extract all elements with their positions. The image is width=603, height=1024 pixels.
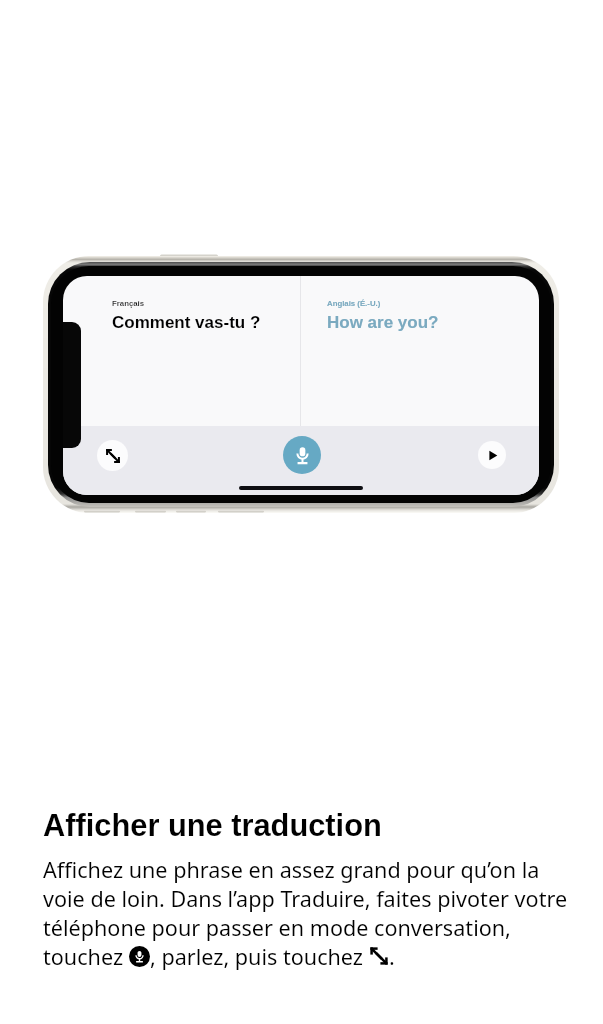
staticText: touchez xyxy=(43,942,129,971)
staticText: voie de loin. Dans l’app Traduire, faite… xyxy=(43,884,568,913)
staticText: How are you? xyxy=(327,313,439,332)
staticText: Afficher une traduction xyxy=(43,808,382,842)
button[interactable]: Expand to full screen xyxy=(97,440,128,471)
staticText: Comment vas-tu ? xyxy=(112,313,261,332)
staticText: téléphone pour passer en mode conversati… xyxy=(43,913,511,942)
staticText: , parlez, puis touchez xyxy=(150,942,369,971)
staticText: Français xyxy=(112,299,145,308)
staticText: Anglais (É.-U.) xyxy=(327,299,381,308)
button[interactable]: Play translation xyxy=(478,441,506,469)
staticText: Affichez une phrase en assez grand pour … xyxy=(43,855,540,884)
button[interactable]: Start speaking xyxy=(283,436,321,474)
staticText: . xyxy=(389,942,395,971)
